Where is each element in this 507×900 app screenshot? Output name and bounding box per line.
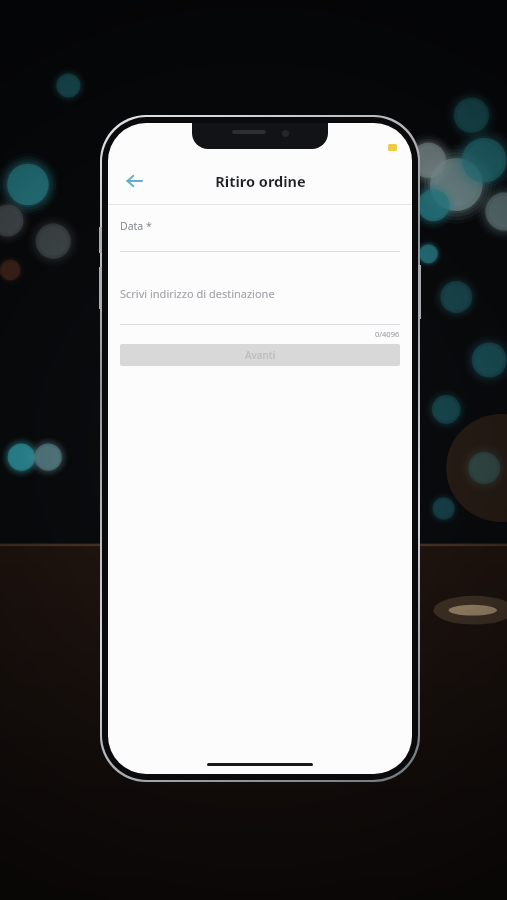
button[interactable]: Back [115, 161, 155, 201]
staticText: Scrivi indirizzo di destinazione [120, 286, 275, 301]
staticText: Data * [120, 219, 152, 233]
button[interactable]: Data * [120, 219, 400, 251]
staticText: 0/4096 [375, 329, 400, 339]
button[interactable]: Scrivi indirizzo di destinazione [120, 286, 400, 324]
staticText: Avanti [245, 348, 276, 362]
staticText: Ritiro ordine [215, 171, 306, 191]
